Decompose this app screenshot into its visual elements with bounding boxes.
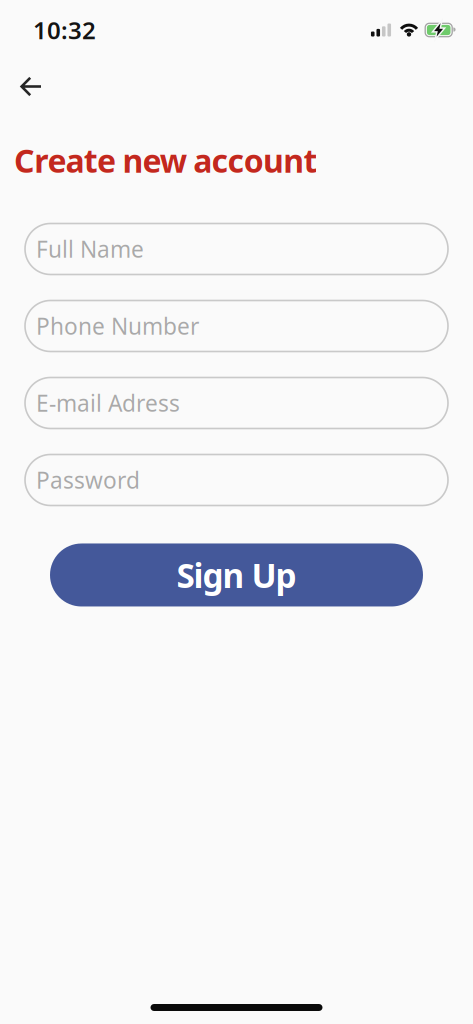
button[interactable]: Sign Up bbox=[50, 543, 423, 606]
button[interactable]: Password bbox=[25, 454, 448, 505]
staticText: Password bbox=[36, 465, 140, 495]
staticText: 10:32 bbox=[33, 14, 96, 46]
button[interactable]: E-mail Adress bbox=[25, 377, 448, 428]
staticText: Sign Up bbox=[176, 553, 296, 597]
button[interactable] bbox=[0, 76, 42, 97]
staticText: E-mail Adress bbox=[36, 388, 180, 418]
button[interactable]: Full Name bbox=[25, 223, 448, 274]
button[interactable]: Phone Number bbox=[25, 300, 448, 351]
staticText: Full Name bbox=[36, 234, 144, 264]
staticText: Phone Number bbox=[36, 311, 199, 341]
staticText: Create new account bbox=[14, 139, 317, 181]
